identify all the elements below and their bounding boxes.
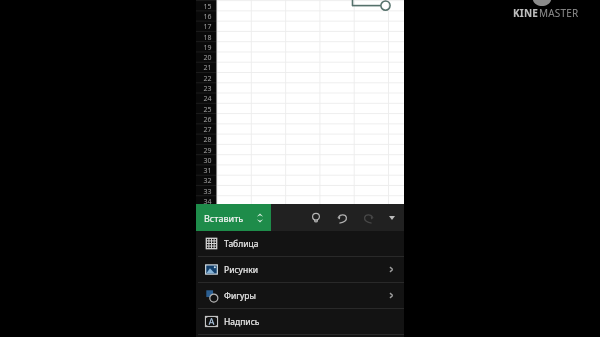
button[interactable]: Надпись [196, 309, 404, 334]
staticText: MASTER [539, 6, 579, 20]
staticText: 15 [203, 2, 212, 12]
button[interactable]: Рисунки [196, 257, 404, 282]
button[interactable]: Вставить [196, 204, 271, 231]
button[interactable]: More options [381, 206, 403, 230]
staticText: 20 [203, 53, 212, 63]
staticText: 18 [203, 33, 212, 43]
staticText: Таблица [224, 238, 259, 250]
staticText: 30 [203, 156, 212, 166]
staticText: 16 [203, 12, 212, 22]
staticText: Надпись [224, 316, 260, 328]
staticText: Фигуры [224, 290, 256, 302]
staticText: 19 [203, 43, 212, 53]
button[interactable]: Tell me [305, 206, 327, 230]
staticText: 32 [203, 176, 212, 186]
staticText: 17 [203, 22, 212, 32]
button[interactable]: Фигуры [196, 283, 404, 308]
staticText: Вставить [204, 212, 244, 224]
staticText: 24 [203, 94, 212, 104]
staticText: 28 [203, 135, 212, 145]
staticText: 22 [203, 74, 212, 84]
staticText: 29 [203, 146, 212, 156]
staticText: Рисунки [224, 264, 258, 276]
staticText: 26 [203, 115, 212, 125]
staticText: KINE [513, 6, 539, 20]
staticText: 27 [203, 125, 212, 135]
staticText: 33 [203, 187, 212, 197]
button[interactable]: Undo [331, 206, 353, 230]
staticText: 34 [203, 197, 212, 207]
staticText: 25 [203, 105, 212, 115]
staticText: 31 [203, 166, 212, 176]
staticText: 21 [203, 63, 212, 73]
button[interactable]: Таблица [196, 231, 404, 256]
button[interactable]: Redo [357, 206, 379, 230]
staticText: 23 [203, 84, 212, 94]
